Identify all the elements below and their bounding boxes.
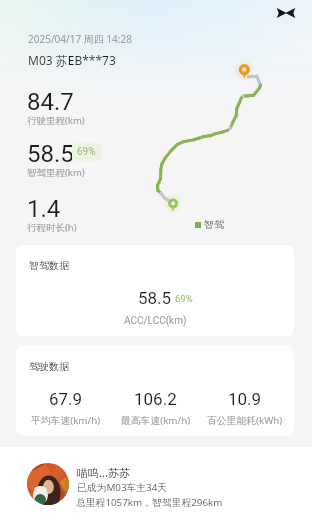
staticText: 最高车速(km/h)	[121, 414, 191, 427]
staticText: 驾驶数据	[29, 360, 69, 373]
staticText: 69%	[175, 293, 193, 304]
button[interactable]: Close	[276, 3, 296, 23]
button[interactable]: 喵呜...苏苏	[0, 447, 312, 524]
staticText: 总里程1057km，智驾里程296km	[76, 496, 223, 509]
staticText: 智驾里程(km)	[27, 166, 85, 179]
staticText: 智驾	[204, 218, 224, 231]
staticText: 已成为M03车主34天	[77, 481, 168, 494]
staticText: 84.7	[27, 88, 74, 116]
staticText: 行程时长(h)	[27, 221, 77, 234]
staticText: 58.5	[27, 140, 74, 168]
staticText: 2025/04/17 周四 14:28	[28, 32, 132, 46]
staticText: 智驾数据	[29, 259, 69, 272]
staticText: 喵呜...苏苏	[77, 465, 130, 480]
staticText: 百公里能耗(kWh)	[207, 414, 283, 427]
staticText: 行驶里程(km)	[27, 114, 85, 127]
staticText: 69%	[77, 146, 96, 158]
button[interactable]: 驾驶数据	[16, 346, 294, 436]
staticText: 106.2	[134, 389, 177, 409]
staticText: 10.9	[228, 389, 262, 409]
staticText: 1.4	[27, 195, 61, 223]
staticText: 平均车速(km/h)	[31, 414, 101, 427]
staticText: M03 苏EB***73	[28, 52, 116, 68]
staticText: 58.5	[138, 288, 172, 308]
button[interactable]: 智驾数据	[16, 245, 294, 336]
staticText: ACC/LCC(km)	[124, 315, 187, 327]
staticText: 67.9	[49, 389, 83, 409]
